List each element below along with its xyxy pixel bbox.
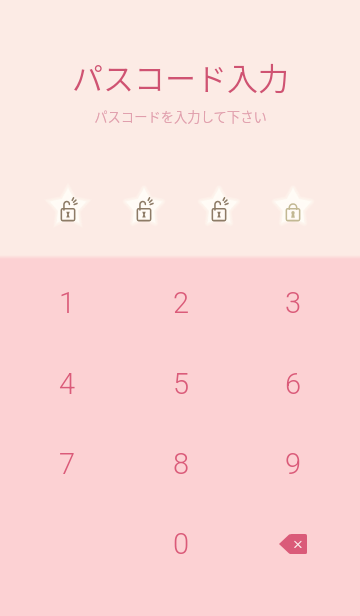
button[interactable]: 9: [241, 423, 345, 504]
staticText: 7: [59, 447, 76, 481]
staticText: 0: [173, 527, 190, 561]
button[interactable]: 5: [129, 343, 233, 424]
staticText: 6: [285, 367, 302, 401]
button[interactable]: 8: [129, 423, 233, 504]
staticText: 9: [285, 447, 302, 481]
staticText: 5: [173, 367, 190, 401]
button[interactable]: Delete: [241, 503, 345, 584]
staticText: パスコードを入力して下さい: [94, 107, 267, 126]
button[interactable]: 2: [129, 262, 233, 343]
staticText: 1: [59, 286, 76, 320]
staticText: 8: [173, 447, 190, 481]
button[interactable]: 3: [241, 262, 345, 343]
button[interactable]: 6: [241, 343, 345, 424]
staticText: パスコード入力: [72, 54, 289, 99]
button[interactable]: 1: [15, 262, 119, 343]
staticText: 4: [59, 367, 76, 401]
button[interactable]: 4: [15, 343, 119, 424]
staticText: 3: [285, 286, 302, 320]
button[interactable]: 0: [129, 503, 233, 584]
staticText: 2: [173, 286, 190, 320]
button[interactable]: 7: [15, 423, 119, 504]
